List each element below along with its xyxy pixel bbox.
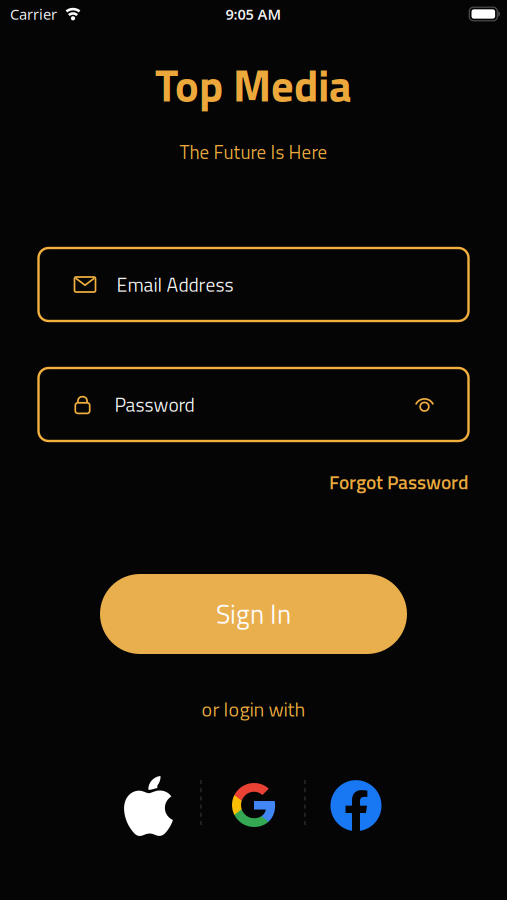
button[interactable]: Sign in with Facebook bbox=[330, 780, 381, 831]
staticText: 9:05 AM bbox=[225, 4, 281, 24]
staticText: Forgot Password bbox=[329, 467, 469, 497]
staticText: Password bbox=[114, 390, 194, 419]
button[interactable]: Password bbox=[38, 368, 468, 441]
button[interactable]: Sign in with Google bbox=[232, 783, 276, 827]
button[interactable]: Sign In bbox=[100, 574, 407, 654]
staticText: Top Media bbox=[155, 51, 352, 119]
staticText: Sign In bbox=[216, 594, 291, 634]
button[interactable]: Show password bbox=[404, 384, 444, 424]
staticText: or login with bbox=[201, 694, 305, 724]
staticText: The Future Is Here bbox=[179, 138, 327, 166]
staticText: Email Address bbox=[116, 270, 233, 299]
staticText: Carrier bbox=[10, 4, 57, 24]
button[interactable]: Forgot Password bbox=[329, 467, 469, 497]
button[interactable]: Sign in with Apple bbox=[118, 776, 178, 836]
button[interactable]: Email Address bbox=[38, 248, 468, 321]
